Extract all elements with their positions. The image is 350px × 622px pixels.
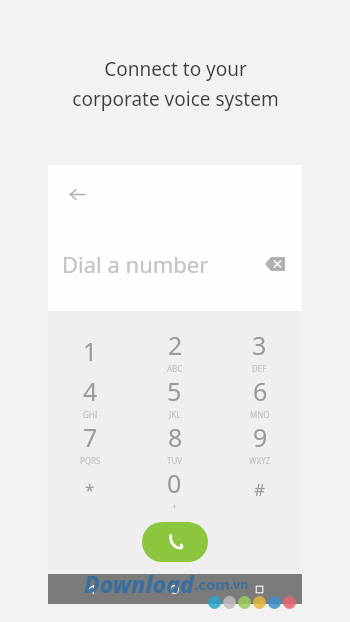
staticText: 8: [168, 420, 183, 454]
staticText: 4: [83, 374, 98, 408]
button[interactable]: 7: [48, 420, 132, 466]
staticText: PQRS: [80, 455, 101, 466]
staticText: 3: [252, 328, 267, 362]
staticText: 2: [168, 328, 183, 362]
button[interactable]: Call: [142, 522, 208, 562]
button[interactable]: 3: [217, 328, 302, 374]
staticText: 1: [83, 334, 98, 368]
button[interactable]: 8: [132, 420, 217, 466]
button[interactable]: *: [48, 466, 132, 512]
staticText: GHI: [83, 409, 98, 420]
button[interactable]: Backspace: [258, 247, 292, 281]
staticText: 9: [253, 420, 268, 454]
staticText: Dial a number: [62, 249, 209, 279]
button[interactable]: Back: [48, 574, 132, 604]
button[interactable]: 4: [48, 374, 132, 420]
button[interactable]: 9: [217, 420, 302, 466]
button[interactable]: Home: [132, 574, 217, 604]
staticText: Connect to your: [104, 56, 247, 82]
staticText: .com: [194, 574, 230, 594]
staticText: *: [85, 478, 95, 501]
staticText: Download: [84, 568, 194, 599]
staticText: 6: [253, 374, 268, 408]
button[interactable]: Back: [58, 175, 96, 213]
button[interactable]: 0: [132, 466, 217, 512]
staticText: +: [172, 501, 177, 512]
staticText: MNO: [250, 409, 270, 420]
staticText: 7: [83, 420, 98, 454]
button[interactable]: 1: [48, 328, 132, 374]
staticText: #: [254, 478, 265, 501]
staticText: corporate voice system: [72, 86, 279, 112]
staticText: WXYZ: [249, 455, 271, 466]
staticText: ABC: [167, 363, 183, 374]
staticText: .vn: [230, 576, 249, 592]
staticText: 0: [167, 466, 182, 500]
button[interactable]: 2: [132, 328, 217, 374]
button[interactable]: 5: [132, 374, 217, 420]
staticText: DEF: [252, 363, 267, 374]
button[interactable]: 6: [217, 374, 302, 420]
staticText: 5: [167, 374, 182, 408]
staticText: TUV: [167, 455, 183, 466]
staticText: JKL: [169, 409, 181, 420]
button[interactable]: #: [217, 466, 302, 512]
button[interactable]: Recents: [217, 574, 302, 604]
